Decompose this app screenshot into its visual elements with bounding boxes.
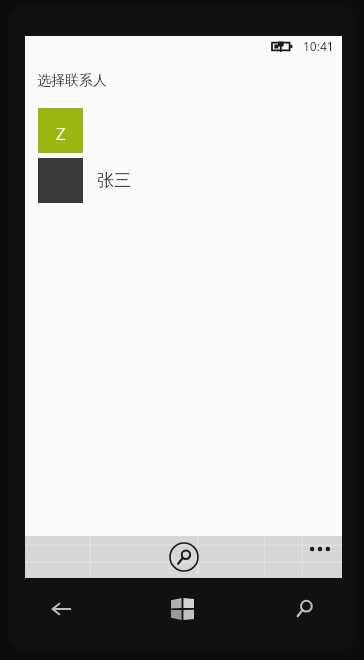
staticText: 10:41	[303, 38, 334, 54]
button[interactable]: z	[38, 108, 83, 153]
button[interactable]: Search	[164, 537, 204, 577]
button[interactable]: Back	[0, 578, 122, 640]
button[interactable]: More options	[298, 536, 342, 562]
button[interactable]: Home	[122, 578, 243, 640]
button[interactable]: 张三	[25, 158, 342, 203]
staticText: 张三	[97, 170, 131, 191]
button[interactable]: Search	[243, 578, 364, 640]
staticText: z	[55, 116, 66, 146]
staticText: 选择联系人	[37, 72, 107, 90]
